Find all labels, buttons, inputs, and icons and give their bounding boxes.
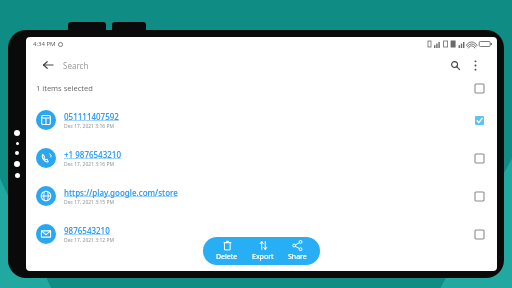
staticText: Delete <box>216 252 238 262</box>
staticText: Dec 17, 2021 3:15 PM <box>64 199 115 206</box>
button[interactable]: +1 9876543210 <box>26 139 497 177</box>
button[interactable]: Back <box>41 58 55 72</box>
staticText: Search <box>63 60 89 71</box>
button[interactable]: More options <box>468 58 482 72</box>
button[interactable]: 9876543210 <box>26 215 497 253</box>
button[interactable]: Share <box>281 238 314 264</box>
button[interactable]: https://play.google.com/store <box>26 177 497 215</box>
staticText: 051111407592 <box>64 111 119 122</box>
staticText: 4:34 PM <box>33 40 56 48</box>
staticText: 1 items selected <box>36 83 93 93</box>
staticText: +1 9876543210 <box>64 149 121 160</box>
button[interactable]: Not selected <box>471 226 487 242</box>
staticText: Dec 17, 2021 3:12 PM <box>64 237 115 244</box>
staticText: https://play.google.com/store <box>64 187 178 198</box>
button[interactable]: Delete <box>209 238 245 264</box>
staticText: Dec 17, 2021 3:16 PM <box>64 123 115 130</box>
button[interactable]: 051111407592 <box>26 101 497 139</box>
button[interactable]: Export <box>245 238 281 264</box>
button[interactable]: Not selected <box>471 150 487 166</box>
button[interactable]: Search <box>448 58 462 72</box>
staticText: Dec 17, 2021 3:16 PM <box>64 161 115 168</box>
button[interactable]: Not selected <box>471 188 487 204</box>
staticText: Export <box>252 252 274 262</box>
button[interactable]: Not selected <box>471 80 487 96</box>
staticText: Share <box>288 252 307 262</box>
staticText: 9876543210 <box>64 225 110 236</box>
button[interactable]: Selected <box>471 112 487 128</box>
button[interactable]: Back <box>33 53 490 77</box>
